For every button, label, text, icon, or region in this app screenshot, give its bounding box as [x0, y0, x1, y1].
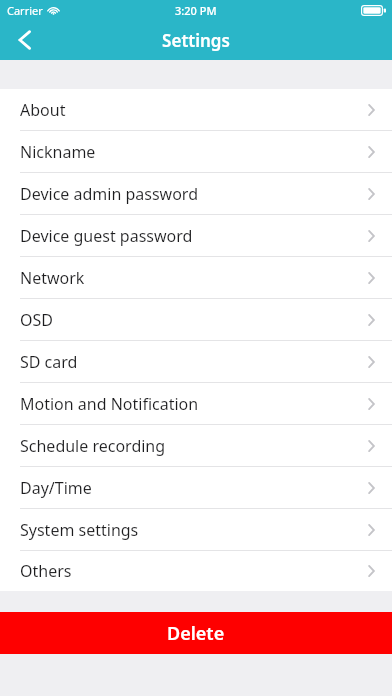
button[interactable]: About: [0, 89, 392, 130]
button[interactable]: SD card: [0, 341, 392, 382]
staticText: OSD: [20, 309, 53, 331]
button[interactable]: Network: [0, 257, 392, 298]
button[interactable]: Others: [0, 551, 392, 591]
button[interactable]: Day/Time: [0, 467, 392, 508]
staticText: About: [20, 99, 66, 121]
button[interactable]: System settings: [0, 509, 392, 550]
staticText: Delete: [167, 621, 225, 646]
button[interactable]: OSD: [0, 299, 392, 340]
staticText: System settings: [20, 519, 139, 541]
staticText: Device guest password: [20, 225, 193, 247]
staticText: SD card: [20, 351, 78, 373]
staticText: Others: [20, 560, 72, 582]
staticText: Schedule recording: [20, 435, 166, 457]
staticText: Motion and Notification: [20, 393, 199, 415]
button[interactable]: Schedule recording: [0, 425, 392, 466]
staticText: Device admin password: [20, 183, 198, 205]
staticText: 3:20 PM: [175, 3, 217, 18]
staticText: Network: [20, 267, 85, 289]
button[interactable]: Device admin password: [0, 173, 392, 214]
staticText: Settings: [162, 29, 230, 52]
button[interactable]: Device guest password: [0, 215, 392, 256]
staticText: Day/Time: [20, 477, 92, 499]
button[interactable]: Nickname: [0, 131, 392, 172]
button[interactable]: Back: [0, 20, 48, 60]
button[interactable]: Motion and Notification: [0, 383, 392, 424]
staticText: Carrier: [7, 3, 43, 18]
staticText: Nickname: [20, 141, 96, 163]
button[interactable]: Delete: [0, 612, 392, 654]
